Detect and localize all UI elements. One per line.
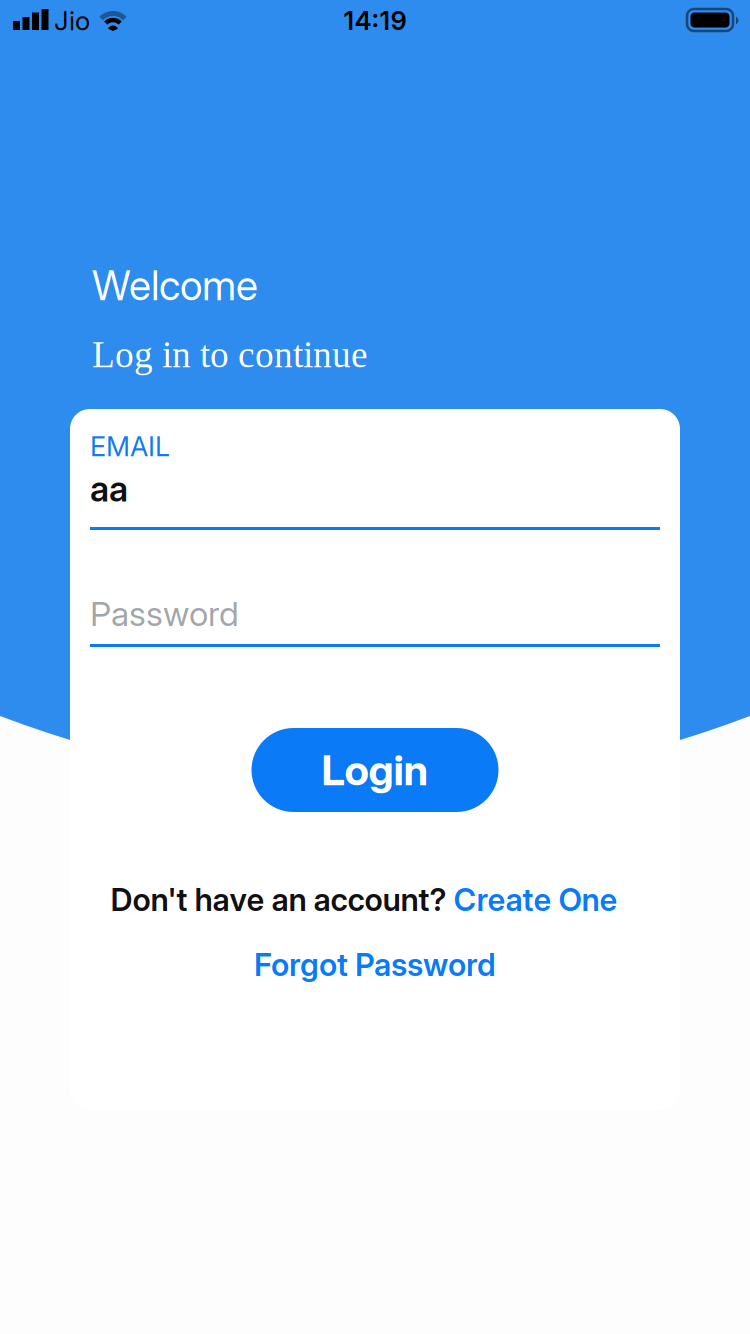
button[interactable]: Forgot Password xyxy=(254,946,496,983)
staticText: Forgot Password xyxy=(254,946,496,983)
staticText: Password xyxy=(90,593,239,634)
staticText: Don't have an account? xyxy=(110,881,453,918)
staticText: aa xyxy=(90,468,128,510)
staticText: Create One xyxy=(453,881,617,918)
button[interactable]: Login xyxy=(251,728,498,812)
button[interactable]: Create One xyxy=(453,881,617,918)
staticText: Jio xyxy=(54,5,90,36)
staticText: 14:19 xyxy=(343,5,406,36)
staticText: EMAIL xyxy=(90,430,170,463)
staticText: Welcome xyxy=(92,261,258,310)
staticText: Login xyxy=(321,745,428,795)
staticText: Log in to continue xyxy=(92,334,368,375)
